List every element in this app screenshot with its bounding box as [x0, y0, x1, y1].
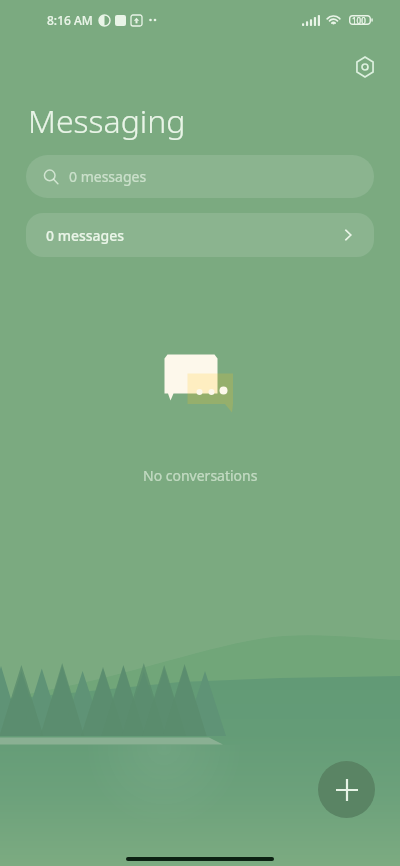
staticText: 0 messages: [46, 226, 125, 245]
button[interactable]: New conversation: [318, 761, 375, 818]
staticText: 100: [352, 15, 366, 25]
staticText: Messaging: [28, 99, 186, 143]
staticText: 0 messages: [69, 167, 147, 186]
staticText: No conversations: [143, 466, 258, 485]
button[interactable]: Settings: [349, 51, 381, 83]
button[interactable]: 0 messages: [26, 213, 374, 257]
button[interactable]: 0 messages: [26, 155, 374, 198]
staticText: 8:16 AM: [47, 12, 93, 28]
